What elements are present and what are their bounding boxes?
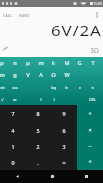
button[interactable]: Home: [35, 170, 69, 183]
button[interactable]: DEL: [86, 93, 99, 105]
button[interactable]: Backspace: [0, 43, 11, 54]
button[interactable]: log: [47, 81, 60, 93]
button[interactable]: +: [77, 154, 103, 170]
staticText: 6: [62, 127, 66, 134]
button[interactable]: m: [0, 69, 8, 81]
button[interactable]: [34, 81, 47, 93]
staticText: 11:05: [93, 1, 102, 6]
button[interactable]: 8: [25, 105, 51, 122]
staticText: ): [53, 97, 55, 102]
button[interactable]: cos: [8, 81, 21, 93]
staticText: xʸ: [13, 97, 17, 102]
button[interactable]: −: [77, 138, 103, 154]
button[interactable]: 3: [51, 138, 77, 154]
button[interactable]: G: [73, 57, 86, 69]
staticText: g: [13, 71, 17, 79]
staticText: M: [64, 59, 70, 67]
button[interactable]: 4: [0, 122, 25, 138]
button[interactable]: 6: [51, 122, 77, 138]
button[interactable]: W: [60, 69, 73, 81]
staticText: ln: [65, 85, 68, 89]
button[interactable]: [21, 93, 34, 105]
button[interactable]: m: [34, 57, 47, 69]
button[interactable]: .: [25, 154, 51, 170]
button[interactable]: 9: [51, 105, 77, 122]
staticText: µ: [26, 59, 30, 67]
button[interactable]: 5: [25, 122, 51, 138]
staticText: e: [79, 85, 81, 89]
button[interactable]: More options: [90, 8, 103, 21]
staticText: 3Ω: [90, 46, 99, 55]
staticText: A: [39, 71, 43, 79]
button[interactable]: Ω: [47, 69, 60, 81]
button[interactable]: k: [47, 57, 60, 69]
button[interactable]: 2: [25, 138, 51, 154]
staticText: +: [88, 158, 92, 166]
button[interactable]: [86, 69, 99, 81]
button[interactable]: M: [60, 57, 73, 69]
staticText: BASIC: [19, 13, 30, 17]
button[interactable]: 1: [0, 138, 25, 154]
button[interactable]: n: [8, 57, 21, 69]
staticText: Ω: [51, 71, 56, 79]
staticText: G: [77, 59, 82, 67]
button[interactable]: ): [47, 93, 60, 105]
staticText: ÷: [88, 110, 92, 118]
staticText: cos: [12, 85, 18, 89]
staticText: 8: [36, 110, 40, 117]
button[interactable]: Back: [0, 170, 35, 183]
staticText: CALC: [3, 13, 12, 17]
staticText: 3: [62, 143, 66, 150]
staticText: 5: [36, 127, 40, 134]
button[interactable]: √: [0, 93, 8, 105]
staticText: m: [38, 59, 44, 67]
staticText: √: [1, 97, 4, 101]
staticText: log: [51, 85, 56, 89]
staticText: V: [26, 71, 30, 79]
button[interactable]: [73, 93, 86, 105]
button[interactable]: 7: [0, 105, 25, 122]
button[interactable]: g: [8, 69, 21, 81]
button[interactable]: =: [51, 154, 77, 170]
staticText: 7: [11, 110, 15, 117]
button[interactable]: V: [21, 69, 34, 81]
staticText: 2: [36, 143, 40, 150]
button[interactable]: π: [86, 81, 99, 93]
staticText: .: [37, 159, 39, 166]
button[interactable]: BASIC: [19, 13, 30, 17]
button[interactable]: p: [0, 57, 8, 69]
button[interactable]: sin: [0, 81, 8, 93]
button[interactable]: e: [73, 81, 86, 93]
button[interactable]: xʸ: [8, 93, 21, 105]
staticText: sin: [0, 85, 5, 89]
staticText: (: [40, 97, 42, 102]
button[interactable]: ÷: [77, 105, 103, 122]
staticText: −: [88, 142, 92, 150]
staticText: DEL: [89, 97, 96, 102]
staticText: W: [64, 71, 70, 79]
staticText: 0: [11, 159, 15, 166]
button[interactable]: (: [34, 93, 47, 105]
staticText: 6V/2A: [51, 20, 102, 40]
staticText: 9: [62, 110, 66, 117]
staticText: m: [0, 71, 5, 79]
button[interactable]: 0: [0, 154, 25, 170]
staticText: 1: [11, 143, 15, 150]
button[interactable]: [73, 69, 86, 81]
button[interactable]: ×: [77, 122, 103, 138]
button[interactable]: [60, 93, 73, 105]
staticText: p: [0, 59, 4, 67]
button[interactable]: CALC: [3, 13, 12, 17]
staticText: n: [13, 59, 17, 67]
button[interactable]: [21, 81, 34, 93]
staticText: π: [91, 85, 94, 89]
staticText: 4: [11, 127, 15, 134]
button[interactable]: ln: [60, 81, 73, 93]
button[interactable]: A: [34, 69, 47, 81]
staticText: =: [62, 159, 66, 166]
staticText: ×: [88, 126, 92, 134]
button[interactable]: µ: [21, 57, 34, 69]
button[interactable]: Recent apps: [69, 170, 103, 183]
button[interactable]: T: [86, 57, 99, 69]
staticText: k: [52, 59, 55, 67]
